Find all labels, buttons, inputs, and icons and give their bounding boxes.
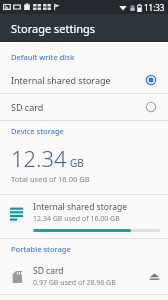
staticText: SD card <box>11 101 145 113</box>
staticText: 11:33 <box>144 2 165 13</box>
button[interactable]: Eject SD card <box>149 271 160 282</box>
staticText: Internal shared storage <box>11 74 145 86</box>
other: Internal shared storage <box>10 206 23 219</box>
staticText: 12.34 GB used of 16.00 GB <box>33 214 120 224</box>
button[interactable]: 12.34 <box>0 141 168 190</box>
staticText: Internal shared storage <box>33 201 128 213</box>
button[interactable]: SD card <box>0 94 168 120</box>
staticText: Total used of 16.00 GB <box>11 174 90 184</box>
other: SD card <box>11 271 23 283</box>
staticText: Storage settings <box>11 21 96 36</box>
button[interactable]: SD card <box>0 259 168 294</box>
staticText: GB <box>70 156 84 170</box>
staticText: Default write disk <box>11 52 75 62</box>
staticText: SD card <box>33 265 64 277</box>
staticText: Portable storage <box>11 244 71 254</box>
staticText: Device storage <box>11 126 64 136</box>
button[interactable]: Internal shared storage <box>0 67 168 93</box>
staticText: 12.34 <box>11 143 67 173</box>
staticText: 0.97 GB used of 28.96 GB <box>33 278 116 288</box>
button[interactable]: Internal shared storage <box>0 195 168 238</box>
